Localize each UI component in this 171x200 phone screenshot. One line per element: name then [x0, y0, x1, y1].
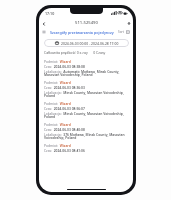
staticText: 2024-06-03 00:00 - 2024-06-28 17:00 — [61, 41, 119, 46]
button[interactable]: Podmiot: Wizard — [44, 80, 128, 101]
staticText: Całkowita prędkość 0 x-ray 0 Czasy — [44, 50, 128, 55]
staticText: Sort — [118, 30, 124, 34]
staticText: Podmiot: Wizard — [44, 122, 71, 126]
staticText: 511-525490 — [75, 20, 98, 26]
staticText: Lokalizacja: Minsk County, Masovian Voiv… — [44, 90, 128, 98]
staticText: Podmiot: Wizard — [44, 59, 71, 63]
staticText: Podmiot: Wizard — [44, 143, 71, 147]
staticText: Czas: 2024-06-03 08:56:07 — [44, 106, 85, 110]
staticText: Czas: 2024-06-03 08:38:08 — [44, 64, 85, 68]
staticText: Czas: 2024-06-03 08:40:08 — [44, 127, 85, 131]
staticText: Czas: 2024-06-03 08:36:03 — [44, 85, 85, 89]
staticText: Lokalizacja: Automatic Motława, Minsk Co… — [44, 69, 128, 77]
button[interactable]: Szczegóły przetwarzania pojedynczy — [39, 28, 133, 36]
staticText: Lokalizacja: Minsk County, Masovian Voiv… — [44, 111, 128, 119]
staticText: Podmiot: Wizard — [44, 80, 71, 84]
button[interactable]: Share — [124, 19, 133, 28]
button[interactable]: Podmiot: Wizard — [44, 101, 128, 122]
button[interactable]: Podmiot: Wizard — [44, 59, 128, 80]
button[interactable]: 2024-06-03 00:00 - 2024-06-28 17:00 — [44, 39, 129, 47]
button[interactable]: Podmiot: Wizard — [44, 143, 128, 155]
staticText: Podmiot: Wizard — [44, 101, 71, 105]
staticText: Lokalizacja: 376 Motława, Minsk County, … — [44, 132, 128, 140]
staticText: Szczegóły przetwarzania pojedynczy — [50, 30, 114, 35]
button[interactable]: Podmiot: Wizard — [44, 122, 128, 143]
staticText: 17:10 — [45, 11, 55, 16]
staticText: Czas: 2024-06-03 08:41:06 — [44, 148, 85, 152]
button[interactable]: Back — [39, 19, 48, 28]
